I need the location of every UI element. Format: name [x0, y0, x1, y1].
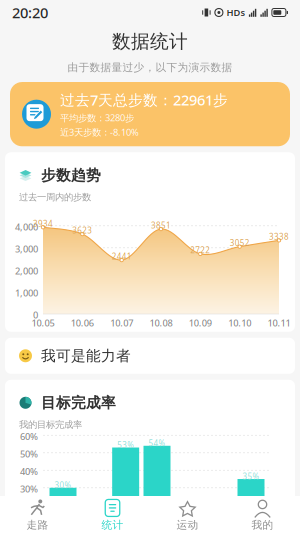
button[interactable]: 走路 — [0, 495, 75, 534]
staticText: 10% — [86, 515, 103, 525]
staticText: 我的目标完成率 — [19, 419, 82, 430]
staticText: 统计 — [101, 518, 123, 531]
staticText: 35% — [242, 471, 259, 482]
staticText: 54% — [148, 438, 165, 448]
staticText: 近3天步数：-8.10% — [60, 126, 139, 138]
staticText: 10.05 — [31, 317, 54, 329]
staticText: 10.11 — [267, 317, 290, 329]
staticText: 30% — [20, 483, 38, 495]
staticText: 我的 — [251, 518, 273, 531]
staticText: 10.09 — [189, 317, 212, 329]
staticText: 3623 — [72, 225, 92, 236]
staticText: 20% — [20, 500, 38, 513]
staticText: 10.07 — [110, 317, 133, 329]
staticText: 40% — [20, 465, 38, 478]
staticText: 60% — [20, 430, 38, 443]
staticText: 2441 — [112, 251, 132, 262]
staticText: 53% — [117, 439, 134, 450]
staticText: 30% — [54, 480, 71, 490]
staticText: 9% — [182, 516, 194, 527]
staticText: 平均步数：3280步 — [60, 111, 134, 124]
staticText: 3851 — [151, 220, 171, 231]
staticText: 过去7天总步数：22961步 — [60, 90, 228, 109]
staticText: 10.10 — [228, 317, 251, 329]
staticText: 4,000 — [15, 221, 38, 233]
staticText: 3338 — [269, 231, 289, 242]
staticText: 10.08 — [149, 317, 172, 329]
staticText: 数据统计 — [112, 30, 188, 53]
staticText: 0 — [33, 309, 38, 321]
staticText: HDs — [226, 6, 245, 19]
button[interactable]: 统计 — [75, 495, 150, 534]
staticText: 2722 — [190, 245, 210, 255]
staticText: 3934 — [33, 218, 53, 229]
staticText: 20:20 — [12, 3, 48, 22]
staticText: 3052 — [230, 238, 250, 248]
staticText: 运动 — [176, 518, 198, 531]
button[interactable]: 我的 — [225, 495, 300, 534]
staticText: 10.06 — [71, 317, 94, 329]
staticText: 50% — [20, 448, 38, 460]
staticText: 由于数据量过少，以下为演示数据 — [67, 61, 232, 74]
staticText: 步数趋势 — [41, 166, 101, 184]
button[interactable]: 运动 — [150, 495, 225, 534]
staticText: 1,000 — [15, 287, 38, 299]
staticText: 目标完成率 — [41, 394, 116, 412]
staticText: 过去一周内的步数 — [19, 191, 91, 203]
staticText: 我可是能力者 — [41, 347, 131, 365]
staticText: 2,000 — [15, 265, 38, 277]
staticText: 走路 — [26, 518, 48, 531]
staticText: 3,000 — [15, 243, 38, 255]
